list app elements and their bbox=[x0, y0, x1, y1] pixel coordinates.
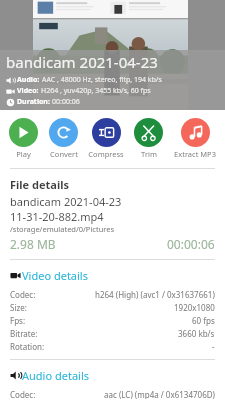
staticText: Compress bbox=[88, 149, 124, 159]
staticText: Video: bbox=[17, 86, 41, 96]
button[interactable]: Trim bbox=[133, 118, 164, 159]
staticText: Duration: bbox=[17, 97, 52, 107]
staticText: Play bbox=[16, 149, 31, 159]
staticText: Codec: bbox=[10, 289, 36, 300]
button[interactable]: Convert bbox=[48, 118, 79, 159]
staticText: Convert bbox=[50, 149, 78, 159]
staticText: Rotation: bbox=[10, 341, 45, 352]
staticText: - bbox=[212, 341, 215, 352]
staticText: h264 (High) (avc1 / 0x31637661) bbox=[95, 289, 215, 300]
staticText: Video details bbox=[22, 268, 88, 283]
staticText: aac (LC) (mp4a / 0x6134706D) bbox=[104, 389, 215, 399]
button[interactable]: Compress bbox=[87, 118, 125, 159]
staticText: H264 , yuv420p, 3455 kb/s, 60 fps bbox=[41, 86, 151, 96]
staticText: Fps: bbox=[10, 315, 26, 326]
staticText: Codec: bbox=[10, 389, 36, 399]
staticText: bandicam 2021-04-23 11-31-20-882.mp4 bbox=[10, 194, 215, 224]
staticText: Audio details bbox=[22, 368, 90, 383]
staticText: Extract MP3 bbox=[174, 149, 216, 159]
staticText: 3660 kb/s bbox=[178, 328, 215, 339]
staticText: 2.98 MB bbox=[10, 236, 56, 252]
staticText: 00:00:06 bbox=[167, 236, 215, 252]
button[interactable]: Play bbox=[8, 118, 39, 159]
staticText: Size: bbox=[10, 302, 27, 313]
staticText: File details bbox=[10, 177, 70, 192]
staticText: Audio: bbox=[17, 75, 42, 85]
staticText: AAC , 48000 Hz, stereo, fltp, 194 kb/s bbox=[42, 75, 162, 85]
staticText: /storage/emulated/0/Pictures bbox=[10, 224, 115, 234]
staticText: bandicam 2021-04-23 bbox=[6, 52, 158, 72]
staticText: Trim bbox=[141, 149, 157, 159]
staticText: 00:00:06 bbox=[52, 97, 80, 107]
staticText: 1920x1080 bbox=[174, 302, 215, 313]
staticText: 60 fps bbox=[192, 315, 215, 326]
button[interactable]: Extract MP3 bbox=[173, 118, 217, 159]
staticText: Bitrate: bbox=[10, 328, 38, 339]
